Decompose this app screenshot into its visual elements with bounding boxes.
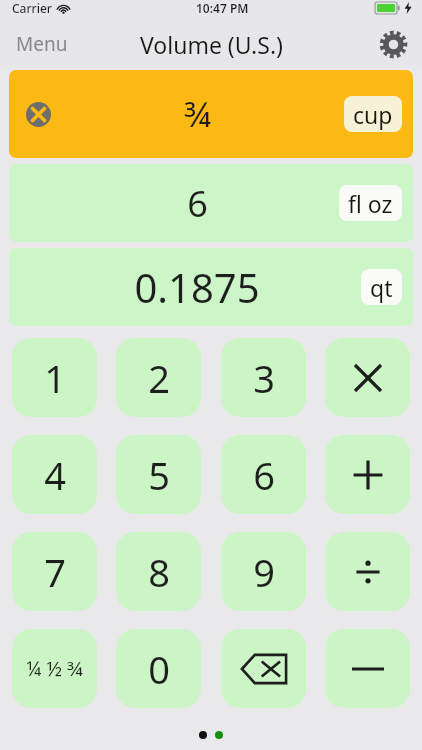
staticText: ¼ ½ ¾	[26, 655, 83, 682]
staticText: qt	[370, 272, 393, 303]
button[interactable]: 6	[221, 435, 306, 514]
button[interactable]: fl oz	[339, 185, 402, 221]
button[interactable]: qt	[361, 269, 402, 305]
staticText: 10:47 PM	[196, 0, 249, 16]
button[interactable]: 9	[221, 532, 306, 611]
button[interactable]: Backspace	[221, 629, 306, 708]
button[interactable]: Clear	[9, 70, 413, 158]
button[interactable]: 6	[9, 164, 413, 242]
staticText: 9	[253, 546, 275, 598]
button[interactable]: 1	[12, 338, 97, 417]
staticText: 1	[44, 352, 66, 404]
button[interactable]: 4	[12, 435, 97, 514]
staticText: ¾	[184, 91, 211, 137]
staticText: 2	[148, 352, 170, 404]
staticText: 0	[148, 643, 170, 695]
staticText: 7	[44, 546, 66, 598]
staticText: 3	[253, 352, 275, 404]
button[interactable]: 0	[116, 629, 201, 708]
button[interactable]: 7	[12, 532, 97, 611]
button[interactable]: Divide	[325, 532, 410, 611]
button[interactable]: Menu	[8, 25, 76, 63]
button[interactable]: Multiply	[325, 338, 410, 417]
button[interactable]: Settings	[376, 27, 410, 61]
staticText: 5	[148, 449, 170, 501]
button[interactable]: ¼ ½ ¾	[12, 629, 97, 708]
button[interactable]: 8	[116, 532, 201, 611]
button[interactable]: Plus	[325, 435, 410, 514]
button[interactable]: cup	[344, 96, 402, 132]
staticText: 4	[44, 449, 66, 501]
button[interactable]: 5	[116, 435, 201, 514]
staticText: 0.1875	[134, 260, 260, 314]
staticText: cup	[353, 99, 393, 130]
staticText: Volume (U.S.)	[140, 29, 283, 60]
staticText: Menu	[16, 31, 68, 57]
button[interactable]: 3	[221, 338, 306, 417]
staticText: 6	[253, 449, 275, 501]
button[interactable]: Clear	[21, 97, 55, 131]
button[interactable]: Minus	[325, 629, 410, 708]
button[interactable]: 0.1875	[9, 248, 413, 326]
staticText: fl oz	[348, 188, 393, 219]
button[interactable]: 2	[116, 338, 201, 417]
staticText: 6	[187, 179, 208, 228]
staticText: Carrier	[12, 0, 52, 16]
staticText: 8	[148, 546, 170, 598]
